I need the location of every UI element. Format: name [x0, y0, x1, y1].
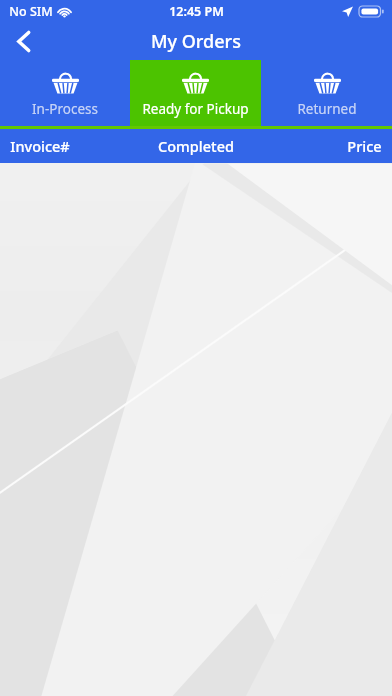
staticText: Invoice#: [10, 136, 70, 156]
button[interactable]: Returned: [261, 60, 392, 126]
staticText: No SIM: [9, 3, 53, 20]
staticText: Price: [347, 136, 382, 156]
button[interactable]: Back: [0, 22, 46, 60]
staticText: Returned: [297, 100, 357, 118]
staticText: My Orders: [151, 29, 241, 54]
button[interactable]: In-Process: [0, 60, 130, 126]
button[interactable]: Ready for Pickup: [130, 60, 261, 126]
staticText: In-Process: [32, 100, 98, 118]
staticText: Completed: [158, 136, 234, 156]
staticText: Ready for Pickup: [142, 100, 249, 118]
staticText: 12:45 PM: [169, 3, 224, 20]
